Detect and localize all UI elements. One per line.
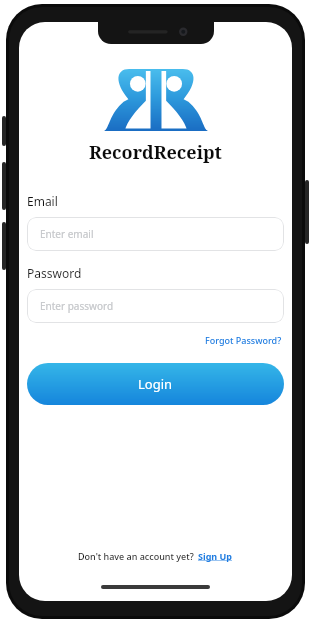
staticText: Login <box>138 375 173 393</box>
button[interactable]: Enter password <box>27 289 284 323</box>
staticText: Enter email <box>40 227 94 241</box>
staticText: Password <box>27 265 82 281</box>
button[interactable]: Enter email <box>27 217 284 251</box>
staticText: RecordReceipt <box>89 140 222 165</box>
staticText: Enter password <box>40 299 114 313</box>
button[interactable]: Forgot Password? <box>203 332 284 348</box>
staticText: Sign Up <box>198 550 233 562</box>
button[interactable]: Sign Up <box>197 548 234 564</box>
staticText: Forgot Password? <box>205 334 282 346</box>
staticText: Email <box>27 193 58 209</box>
staticText: Don't have an account yet? <box>78 550 197 562</box>
button[interactable]: Login <box>27 363 284 405</box>
